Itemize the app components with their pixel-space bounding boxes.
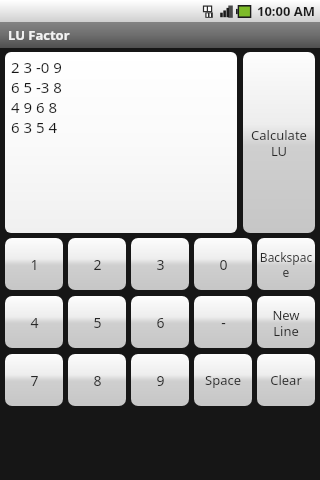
button[interactable]: 1 [5,238,63,290]
staticText: 6 3 5 4 [11,117,58,137]
staticText: 3 [156,255,165,274]
staticText: 0 [219,255,228,274]
button[interactable]: Calculate LU [243,52,315,233]
button[interactable]: New Line [257,296,315,348]
staticText: 1 [30,255,39,274]
staticText: 4 9 6 8 [11,97,58,117]
staticText: 7 [30,371,39,390]
button[interactable]: 4 [5,296,63,348]
button[interactable]: 7 [5,354,63,406]
staticText: Clear [270,371,302,389]
staticText: 9 [156,371,165,390]
button[interactable]: 9 [131,354,189,406]
staticText: Backspace [257,249,315,280]
button[interactable]: Clear [257,354,315,406]
staticText: 8 [93,371,102,390]
button[interactable]: Space [194,354,252,406]
staticText: LU Factor [8,26,70,44]
button[interactable]: 2 3 -0 9 [5,52,237,233]
button[interactable]: Backspace [257,238,315,290]
staticText: 6 5 -3 8 [11,77,62,97]
button[interactable]: 3 [131,238,189,290]
staticText: 6 [156,313,165,332]
staticText: New Line [272,306,300,339]
button[interactable]: 6 [131,296,189,348]
button[interactable]: 0 [194,238,252,290]
staticText: 2 [93,255,102,274]
staticText: Calculate LU [251,126,307,159]
staticText: - [221,313,226,332]
button[interactable]: - [194,296,252,348]
staticText: 4 [30,313,39,332]
staticText: 5 [93,313,102,332]
staticText: 10:00 AM [257,2,316,20]
button[interactable]: 5 [68,296,126,348]
button[interactable]: 2 [68,238,126,290]
staticText: 2 3 -0 9 [11,57,62,77]
button[interactable]: 8 [68,354,126,406]
staticText: Space [205,371,241,389]
